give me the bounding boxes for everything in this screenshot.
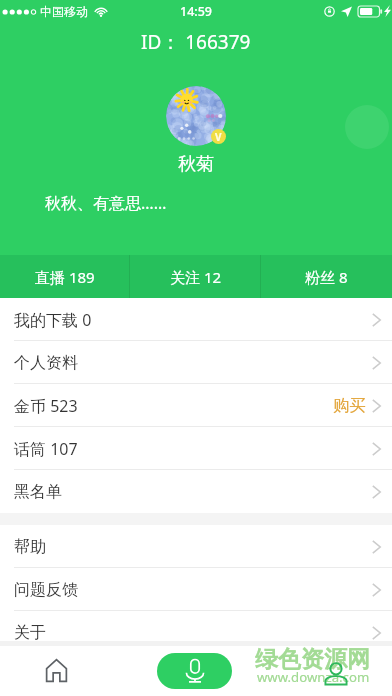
staticText: 帮助 [14, 537, 46, 557]
staticText: 话筒 107 [14, 438, 78, 460]
button[interactable]: 话筒 107 [0, 427, 392, 470]
staticText: 粉丝 8 [305, 267, 348, 287]
staticText: 中国移动 [40, 4, 88, 19]
staticText: 14:59 [180, 3, 213, 20]
staticText: 直播 189 [35, 267, 95, 287]
staticText: 个人资料 [14, 353, 78, 373]
staticText: 秋菊 [178, 153, 214, 176]
staticText: www.downza.com [257, 668, 370, 686]
button[interactable]: 金币 523 [0, 384, 392, 427]
button[interactable]: 我的下载 0 [0, 298, 392, 341]
staticText: ID： 166379 [141, 29, 251, 55]
staticText: 绿色资源网 [255, 645, 370, 674]
staticText: 关注 12 [170, 267, 222, 287]
staticText: 金币 523 [14, 395, 78, 417]
button[interactable]: 关于 [0, 611, 392, 654]
button[interactable]: 问题反馈 [0, 568, 392, 611]
staticText: 问题反馈 [14, 580, 78, 600]
button[interactable]: Profile [293, 653, 378, 694]
staticText: V [215, 130, 222, 144]
staticText: 我的下载 0 [14, 309, 92, 331]
button[interactable]: 帮助 [0, 525, 392, 568]
button[interactable]: 黑名单 [0, 470, 392, 513]
button[interactable]: 个人资料 [0, 341, 392, 384]
button[interactable]: 关注 12 [130, 255, 261, 298]
button[interactable]: Home [14, 650, 99, 691]
staticText: 购买 [333, 395, 366, 416]
staticText: 关于 [14, 623, 46, 643]
staticText: 黑名单 [14, 482, 62, 502]
button[interactable]: 粉丝 8 [261, 255, 392, 298]
staticText: 秋秋、有意思…… [45, 192, 167, 214]
button[interactable]: Record [157, 653, 232, 689]
button[interactable]: 直播 189 [0, 255, 130, 298]
